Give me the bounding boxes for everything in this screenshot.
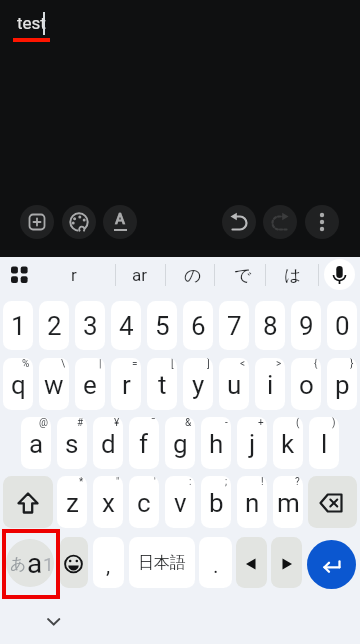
button[interactable]: 日本語 xyxy=(129,537,195,588)
button[interactable] xyxy=(263,205,297,239)
button[interactable]: あ xyxy=(6,539,54,587)
staticText: 日本語 xyxy=(138,553,186,573)
button[interactable] xyxy=(308,476,357,528)
staticText: t xyxy=(158,370,167,400)
button[interactable]: の xyxy=(168,258,218,292)
button[interactable] xyxy=(6,261,34,289)
button[interactable]: k xyxy=(273,417,303,469)
staticText: r xyxy=(71,265,77,285)
staticText: ar xyxy=(132,265,148,285)
staticText: = xyxy=(132,358,138,370)
staticText: \ xyxy=(61,358,66,370)
button[interactable]: 9 xyxy=(291,301,321,350)
button[interactable]: m xyxy=(273,476,303,528)
staticText: test xyxy=(17,13,46,33)
staticText: b xyxy=(209,488,224,518)
button[interactable]: r xyxy=(49,258,99,292)
staticText: y xyxy=(192,370,205,400)
staticText: 6 xyxy=(191,311,206,341)
staticText: * xyxy=(79,476,84,488)
staticText: 3 xyxy=(83,311,98,341)
button[interactable]: f xyxy=(129,417,159,469)
button[interactable]: 4 xyxy=(111,301,141,350)
button[interactable]: 1 xyxy=(3,301,33,350)
staticText: + xyxy=(258,417,264,429)
staticText: は xyxy=(284,265,302,286)
button[interactable]: e xyxy=(75,358,105,410)
staticText: , xyxy=(106,554,111,579)
staticText: > xyxy=(276,358,282,370)
staticText: ¯ xyxy=(151,417,156,429)
staticText: 5 xyxy=(155,311,170,341)
button[interactable]: h xyxy=(201,417,231,469)
button[interactable]: x xyxy=(93,476,123,528)
button[interactable]: d xyxy=(93,417,123,469)
button[interactable] xyxy=(236,537,267,588)
button[interactable]: v xyxy=(165,476,195,528)
button[interactable]: o xyxy=(291,358,321,410)
button[interactable]: 7 xyxy=(219,301,249,350)
staticText: f xyxy=(139,429,149,459)
button[interactable]: で xyxy=(218,258,268,292)
button[interactable] xyxy=(305,205,339,239)
staticText: z xyxy=(66,488,79,518)
button[interactable] xyxy=(307,540,356,589)
button[interactable]: t xyxy=(147,358,177,410)
staticText: v xyxy=(174,488,187,518)
button[interactable]: z xyxy=(57,476,87,528)
button[interactable] xyxy=(222,205,256,239)
button[interactable]: b xyxy=(201,476,231,528)
button[interactable]: 3 xyxy=(75,301,105,350)
button[interactable]: s xyxy=(57,417,87,469)
button[interactable]: 6 xyxy=(183,301,213,350)
button[interactable]: l xyxy=(309,417,339,469)
button[interactable] xyxy=(324,259,355,290)
button[interactable]: は xyxy=(268,258,318,292)
staticText: 1 xyxy=(11,311,26,341)
button[interactable]: 8 xyxy=(255,301,285,350)
staticText: c xyxy=(137,488,151,518)
staticText: あ xyxy=(10,554,27,574)
staticText: < xyxy=(240,358,246,370)
staticText: 7 xyxy=(227,311,242,341)
button[interactable]: g xyxy=(165,417,195,469)
staticText: " xyxy=(116,476,120,488)
button[interactable]: a xyxy=(21,417,51,469)
button[interactable]: y xyxy=(183,358,213,410)
staticText: a xyxy=(29,429,44,459)
staticText: a xyxy=(27,547,43,580)
staticText: l xyxy=(321,429,328,459)
button[interactable] xyxy=(3,476,53,528)
button[interactable]: w xyxy=(39,358,69,410)
button[interactable] xyxy=(20,205,54,239)
button[interactable]: p xyxy=(327,358,357,410)
button[interactable]: u xyxy=(219,358,249,410)
button[interactable]: ar xyxy=(115,258,165,292)
button[interactable]: n xyxy=(237,476,267,528)
button[interactable] xyxy=(60,537,88,588)
staticText: 4 xyxy=(119,311,134,341)
staticText: r xyxy=(122,370,131,400)
button[interactable]: i xyxy=(255,358,285,410)
button[interactable] xyxy=(271,537,302,588)
button[interactable]: 5 xyxy=(147,301,177,350)
button[interactable] xyxy=(62,205,96,239)
button[interactable]: 2 xyxy=(39,301,69,350)
staticText: h xyxy=(209,429,224,459)
button[interactable]: j xyxy=(237,417,267,469)
staticText: x xyxy=(102,488,115,518)
button[interactable]: r xyxy=(111,358,141,410)
button[interactable]: c xyxy=(129,476,159,528)
staticText: j xyxy=(249,429,256,459)
staticText: . xyxy=(213,554,219,579)
button[interactable] xyxy=(44,614,64,630)
staticText: A xyxy=(115,210,125,228)
button[interactable]: , xyxy=(93,537,124,588)
staticText: m xyxy=(277,488,300,518)
button[interactable]: . xyxy=(199,537,232,588)
button[interactable]: q xyxy=(3,358,33,410)
button[interactable]: A xyxy=(103,205,137,239)
staticText: 9 xyxy=(299,311,314,341)
button[interactable]: 0 xyxy=(327,301,357,350)
staticText: s xyxy=(65,429,79,459)
